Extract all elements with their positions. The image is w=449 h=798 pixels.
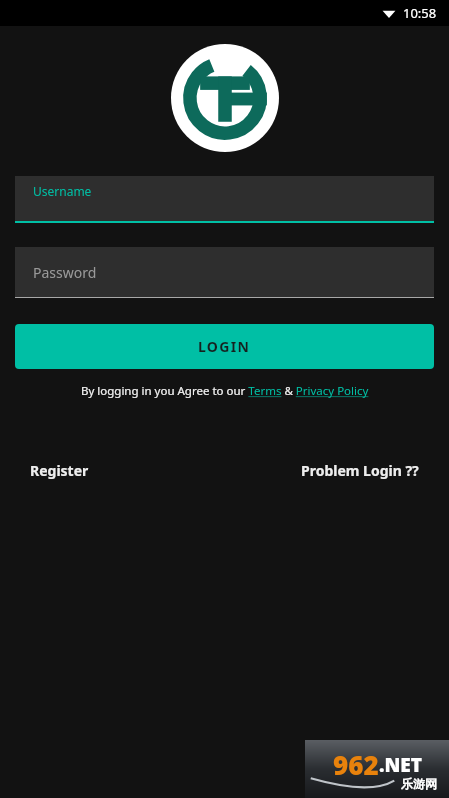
button[interactable]: Username (15, 176, 434, 223)
staticText: LOGIN (198, 337, 251, 356)
staticText: Password (33, 263, 97, 282)
staticText: 962 (333, 747, 379, 782)
button[interactable]: Password (15, 247, 434, 298)
button[interactable]: LOGIN (15, 324, 434, 369)
button[interactable]: Problem Login ?? (301, 456, 419, 485)
staticText: Register (30, 461, 89, 480)
staticText: 10:58 (403, 4, 437, 22)
button[interactable]: Register (30, 456, 89, 485)
staticText: 乐游网 (401, 776, 437, 791)
staticText: Username (33, 183, 92, 199)
staticText: Problem Login ?? (301, 461, 419, 480)
button[interactable]: By logging in you Agree to our Terms & P… (81, 383, 369, 399)
staticText: .NET (379, 752, 422, 778)
